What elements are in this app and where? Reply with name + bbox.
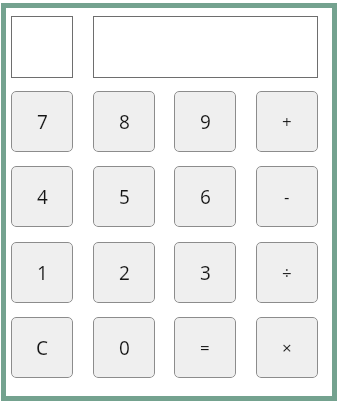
staticText: ÷ <box>282 261 292 284</box>
staticText: - <box>284 185 290 208</box>
button[interactable]: 1 <box>11 242 73 303</box>
staticText: 3 <box>200 260 211 286</box>
staticText: C <box>36 335 49 361</box>
button[interactable]: 2 <box>93 242 155 303</box>
staticText: = <box>200 336 210 359</box>
staticText: × <box>282 336 292 359</box>
button[interactable]: - <box>256 166 318 227</box>
staticText: 5 <box>119 184 130 210</box>
button[interactable]: 6 <box>174 166 236 227</box>
staticText: 7 <box>37 109 48 135</box>
button[interactable]: 3 <box>174 242 236 303</box>
button[interactable]: + <box>256 91 318 152</box>
button[interactable]: = <box>174 317 236 378</box>
staticText: + <box>282 110 292 133</box>
staticText: 2 <box>119 260 130 286</box>
staticText: 4 <box>37 184 48 210</box>
staticText: 6 <box>200 184 211 210</box>
button[interactable]: 0 <box>93 317 155 378</box>
staticText: 8 <box>119 109 130 135</box>
button[interactable]: 5 <box>93 166 155 227</box>
button[interactable]: 7 <box>11 91 73 152</box>
staticText: 0 <box>119 335 130 361</box>
button[interactable]: 4 <box>11 166 73 227</box>
button[interactable]: 9 <box>174 91 236 152</box>
staticText: 9 <box>200 109 211 135</box>
staticText: 1 <box>37 260 48 286</box>
button[interactable]: 8 <box>93 91 155 152</box>
button[interactable]: C <box>11 317 73 378</box>
button[interactable]: × <box>256 317 318 378</box>
button[interactable]: ÷ <box>256 242 318 303</box>
